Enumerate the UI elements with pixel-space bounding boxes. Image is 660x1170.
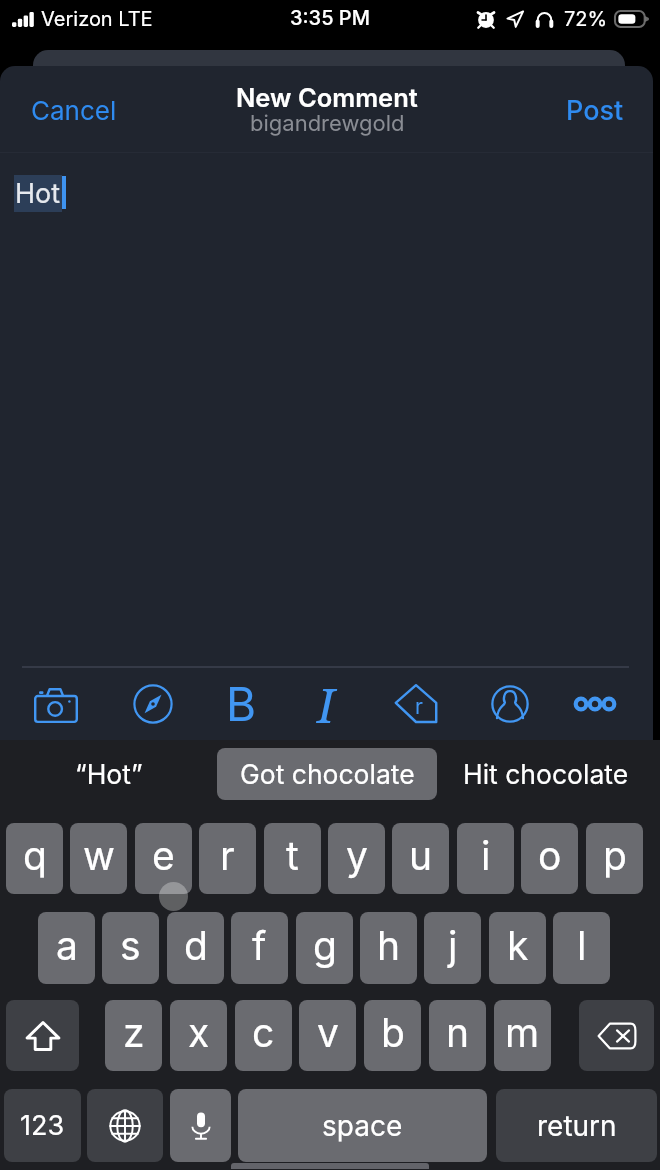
staticText: l [577,922,587,969]
staticText: I [317,672,335,737]
staticText: s [120,922,141,969]
button[interactable]: Cancel [0,83,135,138]
button[interactable]: m [494,1000,551,1071]
staticText: New Comment [236,82,418,113]
button[interactable]: Bold [211,668,271,740]
staticText: Verizon LTE [41,7,153,31]
button[interactable]: q [6,823,63,894]
staticText: Hot [15,177,61,210]
staticText: p [603,832,627,879]
button[interactable]: j [424,912,481,984]
button[interactable]: u [392,823,449,894]
button[interactable]: c [235,1000,292,1071]
button[interactable]: s [102,912,159,984]
button[interactable]: Got chocolate [217,748,437,800]
staticText: t [286,832,299,879]
button[interactable]: Change keyboard [87,1089,163,1162]
button[interactable]: “Hot” [0,748,219,800]
button[interactable]: h [360,912,417,984]
button[interactable]: Add photo [26,668,86,740]
staticText: 123 [20,1109,65,1142]
staticText: i [481,832,491,879]
staticText: r [415,694,423,719]
staticText: b [381,1009,405,1056]
button[interactable]: n [429,1000,486,1071]
staticText: k [507,922,529,969]
staticText: d [184,922,208,969]
staticText: v [317,1009,339,1056]
button[interactable]: return [496,1089,657,1162]
staticText: y [346,832,368,879]
staticText: u [409,832,433,879]
button[interactable]: i [457,823,514,894]
staticText: j [448,922,458,969]
staticText: x [188,1009,210,1056]
button[interactable]: l [553,912,610,984]
button[interactable]: Backspace [579,1000,654,1071]
button[interactable]: v [299,1000,356,1071]
staticText: “Hot” [75,758,143,790]
staticText: return [537,1109,617,1143]
staticText: Cancel [31,95,117,126]
staticText: bigandrewgold [250,110,405,137]
staticText: a [56,922,78,969]
staticText: Got chocolate [240,758,415,790]
staticText: c [252,1009,275,1056]
button[interactable]: y [328,823,385,894]
button[interactable]: x [170,1000,227,1071]
button[interactable]: a [38,912,95,984]
staticText: 3:35 PM [290,6,370,30]
button[interactable]: Dictate [170,1089,231,1162]
button[interactable]: space [238,1089,487,1162]
staticText: g [313,922,337,969]
button[interactable]: 123 [4,1089,81,1162]
staticText: B [226,676,257,732]
staticText: q [23,832,47,879]
button[interactable]: Insert link [123,668,183,740]
staticText: r [220,832,235,879]
staticText: z [123,1009,145,1056]
button[interactable]: Mention user [480,668,540,740]
button[interactable]: Shift [6,1000,79,1071]
button[interactable]: Italic [296,668,356,740]
staticText: h [377,922,401,969]
staticText: 72% [564,7,608,31]
button[interactable]: p [586,823,643,894]
button[interactable]: Post [548,82,653,139]
button[interactable]: k [489,912,546,984]
button[interactable]: z [105,1000,162,1071]
staticText: f [252,922,267,969]
staticText: n [446,1009,470,1056]
button[interactable]: d [167,912,224,984]
button[interactable]: g [296,912,353,984]
button[interactable]: r [199,823,256,894]
button[interactable]: w [70,823,127,894]
staticText: w [83,832,115,879]
button[interactable]: e [135,823,192,894]
staticText: o [538,832,562,879]
button[interactable]: Hit chocolate [436,748,656,800]
staticText: m [505,1009,540,1056]
staticText: Hit chocolate [463,758,629,790]
staticText: Post [566,94,624,127]
button[interactable]: o [521,823,578,894]
button[interactable]: More options [565,668,625,740]
button[interactable]: b [364,1000,421,1071]
staticText: space [322,1109,403,1143]
button[interactable]: Tag subreddit [386,668,446,740]
button[interactable]: f [231,912,288,984]
staticText: e [152,832,175,879]
button[interactable]: t [264,823,321,894]
